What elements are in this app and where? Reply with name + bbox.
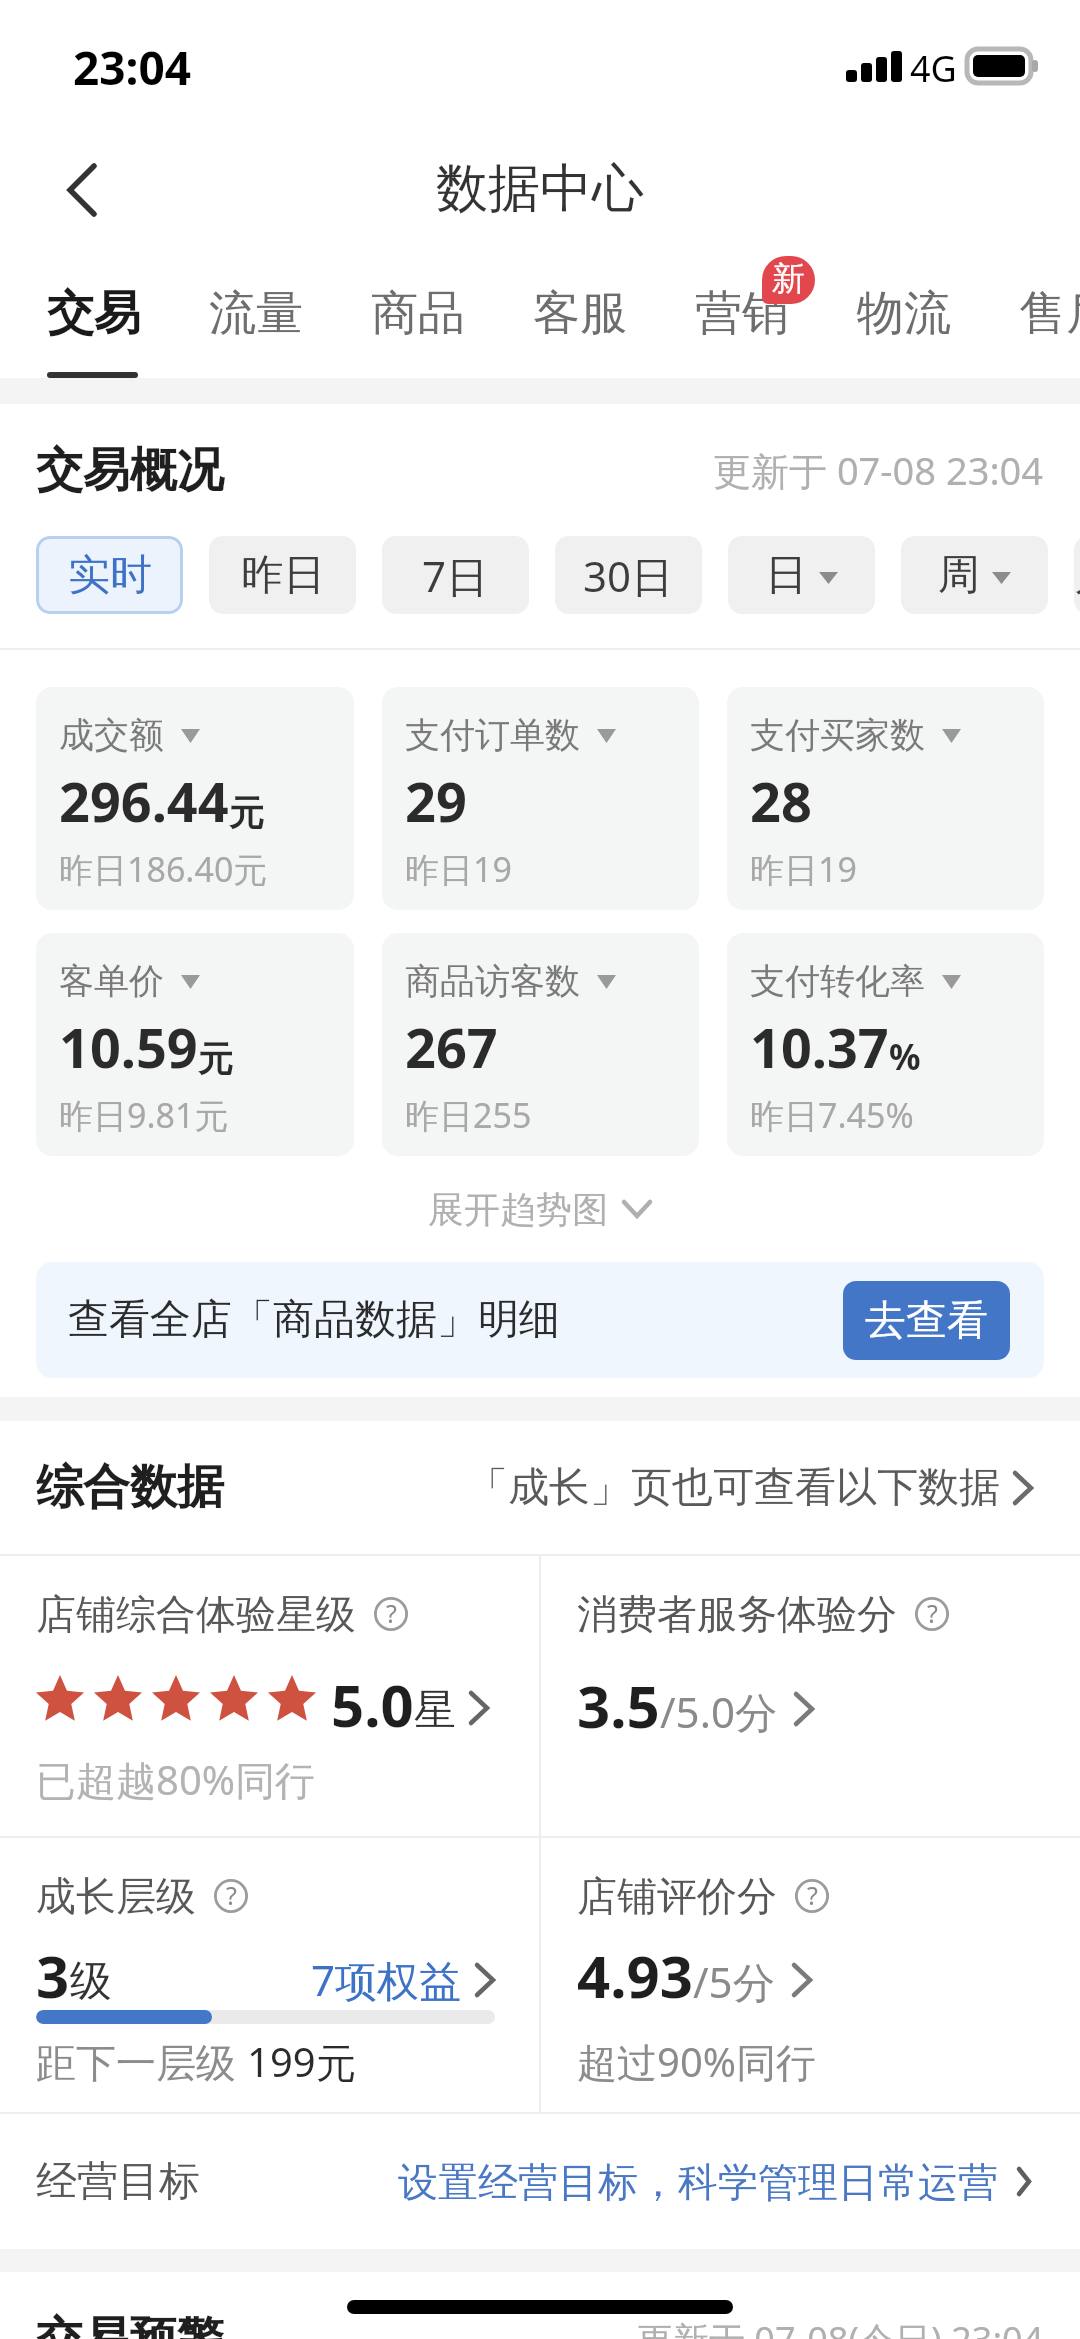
- staticText: 昨日9.81元: [59, 1092, 229, 1138]
- staticText: 成交额: [59, 713, 164, 757]
- staticText: 7项权益: [311, 1951, 462, 2008]
- button[interactable]: 周: [901, 536, 1048, 614]
- button[interactable]: Back: [40, 136, 124, 244]
- button[interactable]: 支付买家数: [727, 687, 1044, 910]
- staticText: 昨日255: [405, 1092, 532, 1138]
- staticText: 元: [229, 791, 264, 835]
- button[interactable]: 商品访客数: [382, 933, 699, 1156]
- staticText: 199元: [247, 2034, 356, 2089]
- staticText: 元: [198, 1037, 233, 1081]
- staticText: 展开趋势图: [428, 1187, 608, 1232]
- staticText: 经营目标: [36, 2156, 200, 2208]
- button[interactable]: 去查看: [843, 1281, 1010, 1360]
- staticText: 查看全店「商品数据」明细: [68, 1294, 560, 1346]
- staticText: 日: [765, 549, 807, 602]
- staticText: 3.5: [577, 1666, 660, 1745]
- staticText: 交易概况: [36, 441, 224, 500]
- staticText: 物流: [857, 284, 951, 343]
- staticText: 28: [750, 764, 812, 838]
- button[interactable]: 综合数据: [0, 1421, 1080, 1554]
- staticText: 超过90%同行: [577, 2034, 816, 2089]
- staticText: 店铺评价分: [577, 1871, 777, 1921]
- staticText: ?: [927, 1596, 938, 1630]
- button[interactable]: 店铺综合体验星级: [0, 1556, 539, 1836]
- staticText: 4G: [910, 44, 957, 93]
- button[interactable]: 店铺评价分: [541, 1838, 1080, 2112]
- staticText: 10.59: [59, 1010, 198, 1084]
- staticText: 店铺综合体验星级: [36, 1589, 356, 1639]
- staticText: 支付转化率: [750, 959, 925, 1003]
- staticText: 23:04: [73, 36, 192, 99]
- staticText: 昨日19: [750, 846, 857, 892]
- button[interactable]: 成交额: [36, 687, 354, 910]
- staticText: 支付买家数: [750, 713, 925, 757]
- button[interactable]: 7日: [382, 536, 529, 614]
- staticText: 10.37: [750, 1010, 889, 1084]
- staticText: 昨日186.40元: [59, 846, 268, 892]
- staticText: 「成长」页也可查看以下数据: [467, 1462, 1000, 1514]
- staticText: 客服: [533, 284, 627, 343]
- staticText: 营销: [695, 284, 789, 343]
- button[interactable]: 商品: [371, 272, 475, 378]
- staticText: 267: [405, 1010, 498, 1084]
- staticText: %: [889, 1033, 921, 1081]
- button[interactable]: 30日: [555, 536, 702, 614]
- staticText: /5分: [693, 1953, 775, 2010]
- staticText: 商品: [371, 284, 465, 343]
- staticText: 交易: [47, 284, 141, 343]
- staticText: 商品访客数: [405, 959, 580, 1003]
- staticText: 已超越80%同行: [36, 1752, 315, 1807]
- staticText: 客单价: [59, 959, 164, 1003]
- staticText: 30日: [583, 547, 674, 604]
- button[interactable]: 客单价: [36, 933, 354, 1156]
- staticText: 昨日7.45%: [750, 1092, 914, 1138]
- staticText: 296.44: [59, 764, 229, 838]
- staticText: 昨日19: [405, 846, 512, 892]
- button[interactable]: 物流: [857, 272, 961, 378]
- staticText: 29: [405, 764, 467, 838]
- staticText: ?: [226, 1878, 237, 1912]
- staticText: /5.0分: [660, 1683, 777, 1740]
- button[interactable]: 成长层级: [0, 1838, 539, 2112]
- staticText: 综合数据: [36, 1458, 224, 1517]
- staticText: 3: [36, 1936, 70, 2015]
- staticText: 昨日: [241, 549, 325, 602]
- staticText: 4.93: [577, 1936, 693, 2015]
- staticText: 更新于 07-08 23:04: [713, 444, 1044, 496]
- button[interactable]: 日: [728, 536, 875, 614]
- staticText: 设置经营目标，科学管理日常运营: [398, 2157, 998, 2207]
- button[interactable]: 经营目标: [0, 2114, 1080, 2249]
- staticText: 距下一层级: [36, 2034, 247, 2089]
- staticText: 5.0: [331, 1665, 414, 1744]
- button[interactable]: 支付订单数: [382, 687, 699, 910]
- button[interactable]: 消费者服务体验分: [541, 1556, 1080, 1836]
- button[interactable]: 支付转化率: [727, 933, 1044, 1156]
- staticText: 成长层级: [36, 1871, 196, 1921]
- staticText: 7日: [422, 547, 489, 604]
- staticText: 去查看: [865, 1295, 988, 1347]
- button[interactable]: 昨日: [209, 536, 356, 614]
- staticText: 数据中心: [436, 156, 644, 222]
- staticText: 交易预警: [36, 2310, 224, 2339]
- staticText: 级: [70, 1955, 112, 2008]
- button[interactable]: 实时: [36, 536, 183, 614]
- staticText: 新: [772, 258, 805, 300]
- staticText: ?: [807, 1878, 818, 1912]
- staticText: 售后: [1019, 284, 1080, 343]
- button[interactable]: 交易: [47, 272, 151, 378]
- staticText: 周: [938, 549, 980, 602]
- button[interactable]: 查看全店「商品数据」明细: [36, 1262, 1044, 1378]
- button[interactable]: 售后: [1019, 272, 1080, 378]
- staticText: 更新于 07-08(今日) 23:04: [637, 2315, 1044, 2339]
- staticText: 实时: [68, 549, 152, 602]
- button[interactable]: 客服: [533, 272, 637, 378]
- staticText: 月: [1074, 549, 1080, 602]
- staticText: ?: [386, 1596, 397, 1630]
- staticText: 星: [414, 1684, 456, 1737]
- button[interactable]: 月: [1074, 536, 1080, 614]
- button[interactable]: 流量: [209, 272, 313, 378]
- staticText: 支付订单数: [405, 713, 580, 757]
- button[interactable]: 展开趋势图: [0, 1156, 1080, 1262]
- button[interactable]: 营销: [695, 272, 799, 378]
- staticText: 流量: [209, 284, 303, 343]
